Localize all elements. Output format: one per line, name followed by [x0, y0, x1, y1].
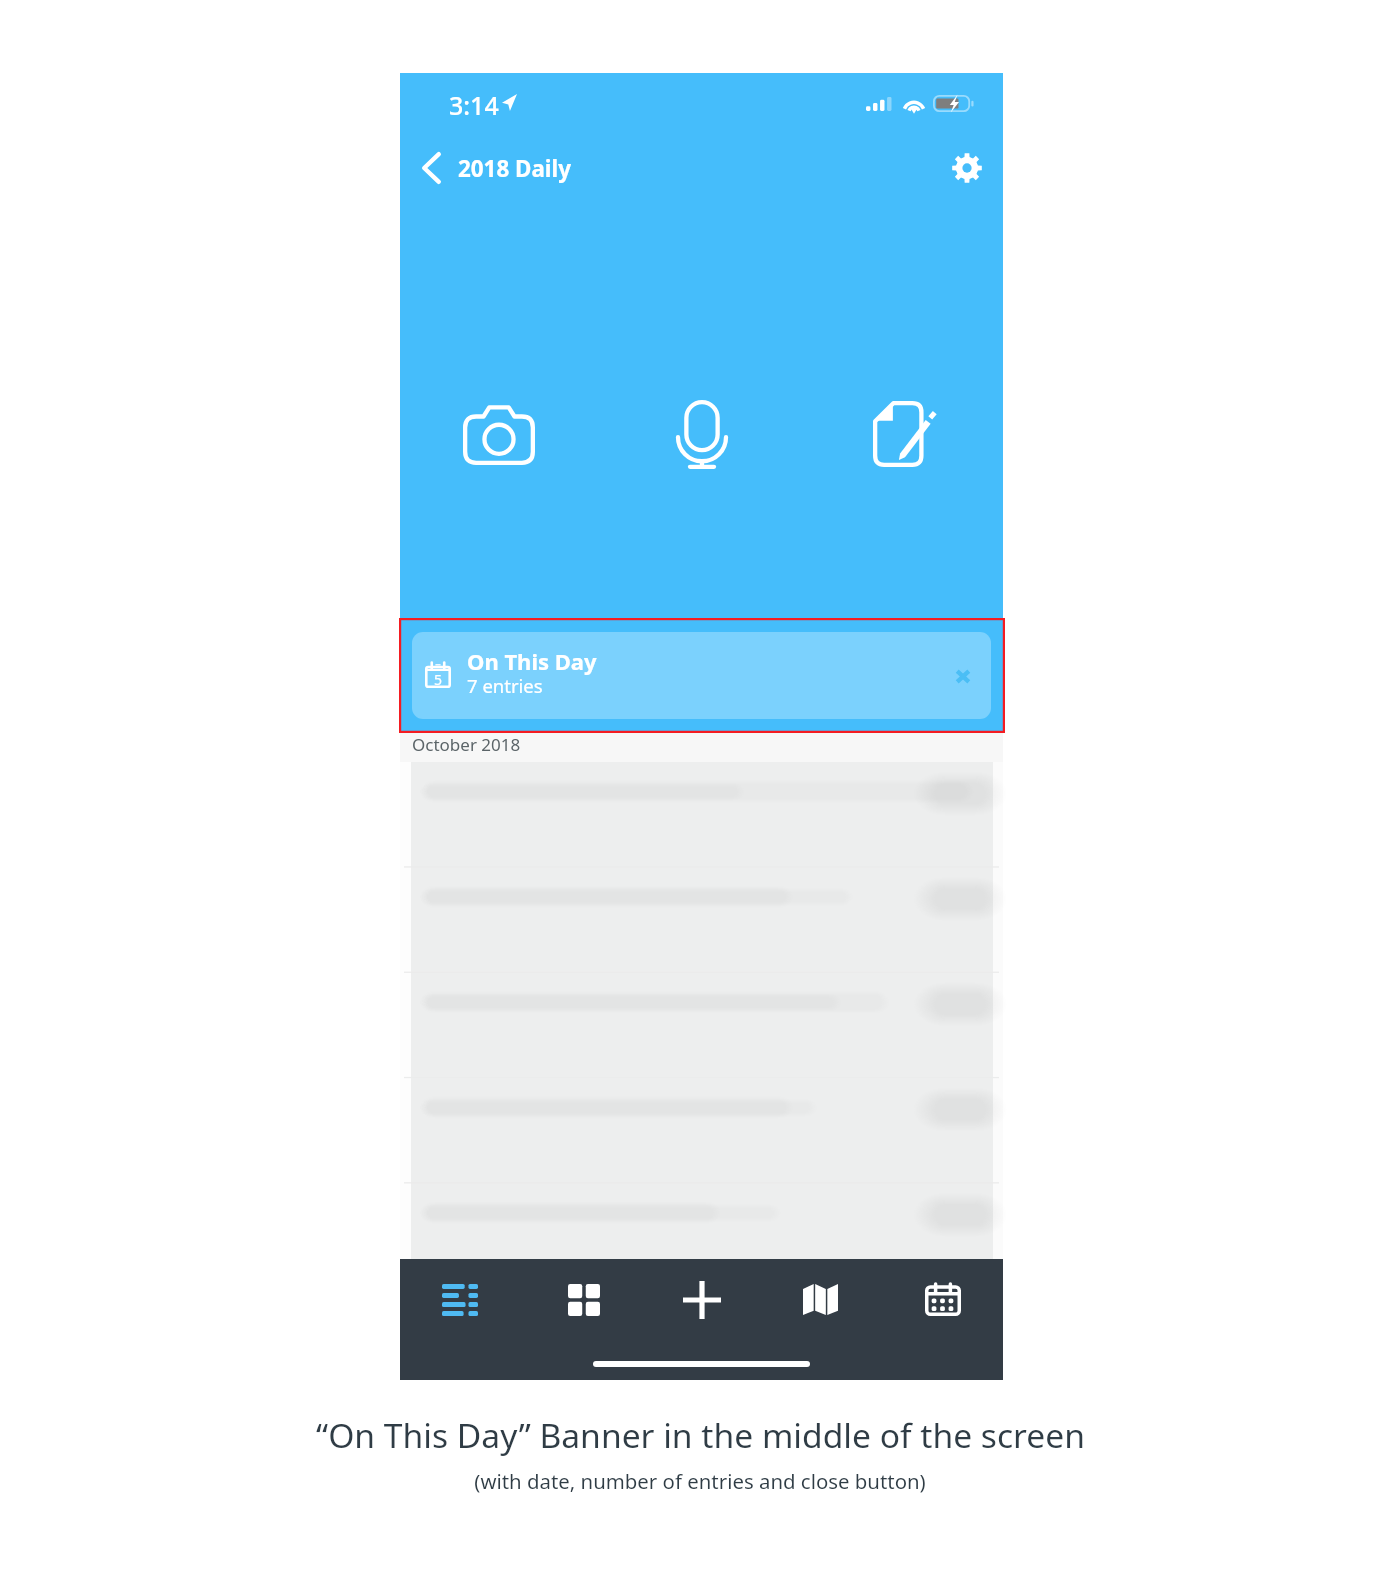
staticText: On This Day: [467, 646, 597, 676]
button[interactable]: Map: [784, 1263, 856, 1335]
button[interactable]: 5: [412, 632, 991, 719]
button[interactable]: Grid: [548, 1264, 620, 1336]
button[interactable]: Journal entry 5: [400, 1182, 1003, 1259]
button[interactable]: Calendar: [907, 1264, 979, 1336]
button[interactable]: Timeline: [424, 1264, 496, 1336]
button[interactable]: Record audio: [665, 395, 739, 473]
button[interactable]: Dismiss: [947, 660, 979, 692]
button[interactable]: Add entry: [666, 1264, 738, 1336]
button[interactable]: Settings: [945, 146, 989, 190]
button[interactable]: Journal entry 1: [400, 762, 1003, 867]
staticText: “On This Day” Banner in the middle of th…: [316, 1412, 1085, 1458]
staticText: October 2018: [412, 733, 521, 756]
button[interactable]: Journal entry 4: [400, 1077, 1003, 1182]
button[interactable]: Journal entry 2: [400, 867, 1003, 972]
button[interactable]: Take photo: [462, 395, 536, 473]
staticText: 3:14: [449, 88, 499, 122]
staticText: 7 entries: [467, 673, 543, 698]
staticText: 5: [434, 670, 443, 689]
button[interactable]: Journal entry 3: [400, 972, 1003, 1077]
button[interactable]: Back: [415, 146, 579, 190]
staticText: 2018 Daily: [458, 153, 572, 184]
staticText: (with date, number of entries and close …: [474, 1467, 926, 1495]
button[interactable]: Write entry: [868, 395, 942, 473]
